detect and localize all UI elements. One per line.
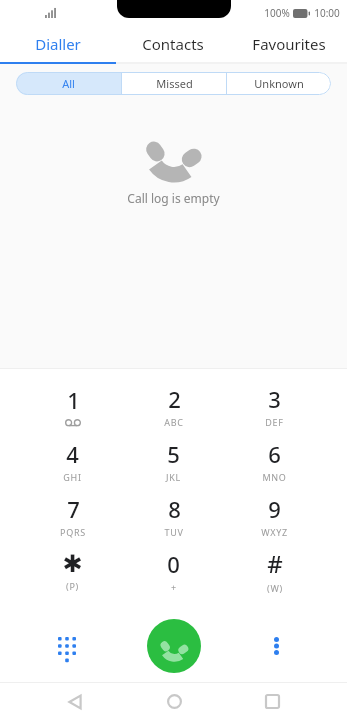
button[interactable]: 4: [22, 433, 123, 488]
button[interactable]: 7: [22, 488, 123, 543]
staticText: Unknown: [254, 76, 304, 91]
staticText: 0: [167, 549, 180, 579]
button[interactable]: 1: [22, 378, 123, 433]
button[interactable]: 2: [123, 378, 224, 433]
staticText: Call log is empty: [127, 190, 220, 206]
staticText: +: [171, 581, 177, 593]
button[interactable]: Dialpad: [46, 625, 88, 667]
staticText: 7: [67, 494, 80, 524]
button[interactable]: Missed: [122, 72, 226, 95]
staticText: 2: [168, 384, 181, 414]
button[interactable]: 3: [224, 378, 325, 433]
button[interactable]: More options: [255, 625, 297, 667]
staticText: Missed: [156, 76, 193, 91]
staticText: 10:00: [314, 6, 340, 20]
staticText: 6: [268, 439, 281, 469]
staticText: (P): [66, 580, 79, 592]
staticText: 1: [67, 385, 80, 415]
staticText: WXYZ: [261, 526, 288, 538]
button[interactable]: Call: [147, 619, 201, 673]
staticText: ✱: [62, 550, 83, 578]
staticText: 9: [268, 494, 281, 524]
button[interactable]: Favourites: [231, 25, 347, 62]
button[interactable]: 0: [123, 543, 224, 598]
staticText: GHI: [63, 471, 82, 483]
staticText: Favourites: [252, 34, 326, 54]
staticText: 100%: [264, 6, 290, 20]
button[interactable]: Contacts: [115, 25, 231, 62]
staticText: DEF: [265, 416, 284, 428]
staticText: 4: [66, 439, 79, 469]
staticText: 5: [167, 439, 180, 469]
staticText: #: [267, 547, 283, 580]
staticText: PQRS: [60, 526, 86, 538]
button[interactable]: Unknown: [227, 72, 331, 95]
staticText: TUV: [164, 526, 184, 538]
button[interactable]: #: [224, 543, 325, 598]
button[interactable]: 9: [224, 488, 325, 543]
button[interactable]: Dialler: [0, 25, 115, 62]
button[interactable]: Recents: [249, 683, 295, 720]
staticText: Contacts: [142, 34, 204, 54]
button[interactable]: Home: [151, 683, 197, 720]
staticText: 8: [168, 494, 181, 524]
button[interactable]: 8: [123, 488, 224, 543]
button[interactable]: ✱: [22, 543, 123, 598]
button[interactable]: 5: [123, 433, 224, 488]
staticText: All: [62, 76, 75, 91]
staticText: JKL: [166, 471, 181, 483]
staticText: ABC: [164, 416, 184, 428]
staticText: MNO: [262, 471, 287, 483]
staticText: (W): [267, 582, 283, 594]
staticText: 3: [268, 384, 281, 414]
button[interactable]: 6: [224, 433, 325, 488]
staticText: Dialler: [35, 34, 81, 54]
button[interactable]: Back: [52, 683, 98, 720]
button[interactable]: All: [16, 72, 121, 95]
